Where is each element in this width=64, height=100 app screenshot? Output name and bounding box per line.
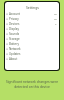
button[interactable]: Privacy xyxy=(5,16,59,21)
button[interactable]: Account xyxy=(5,11,59,16)
staticText: Devices xyxy=(9,22,20,26)
button[interactable]: Network xyxy=(5,46,59,51)
staticText: 3 xyxy=(55,22,57,25)
staticText: Significant network changes were detecte… xyxy=(2,79,62,89)
button[interactable]: About xyxy=(5,56,59,61)
staticText: on xyxy=(54,17,57,20)
staticText: Battery xyxy=(9,42,19,46)
staticText: Storage xyxy=(9,37,20,41)
staticText: Updates xyxy=(9,52,21,56)
button[interactable]: Updates xyxy=(5,51,59,56)
staticText: Sounds xyxy=(9,32,20,36)
staticText: on xyxy=(54,12,57,15)
staticText: Account xyxy=(9,12,20,16)
staticText: Network xyxy=(9,47,21,51)
staticText: About xyxy=(9,57,18,61)
button[interactable]: Devices xyxy=(5,21,59,26)
button[interactable]: Sounds xyxy=(5,31,59,36)
button[interactable]: Storage xyxy=(5,36,59,41)
staticText: Display xyxy=(9,27,19,31)
staticText: Privacy xyxy=(9,17,19,21)
button[interactable]: Battery xyxy=(5,41,59,46)
button[interactable]: Display xyxy=(5,26,59,31)
staticText: Settings xyxy=(26,5,39,10)
